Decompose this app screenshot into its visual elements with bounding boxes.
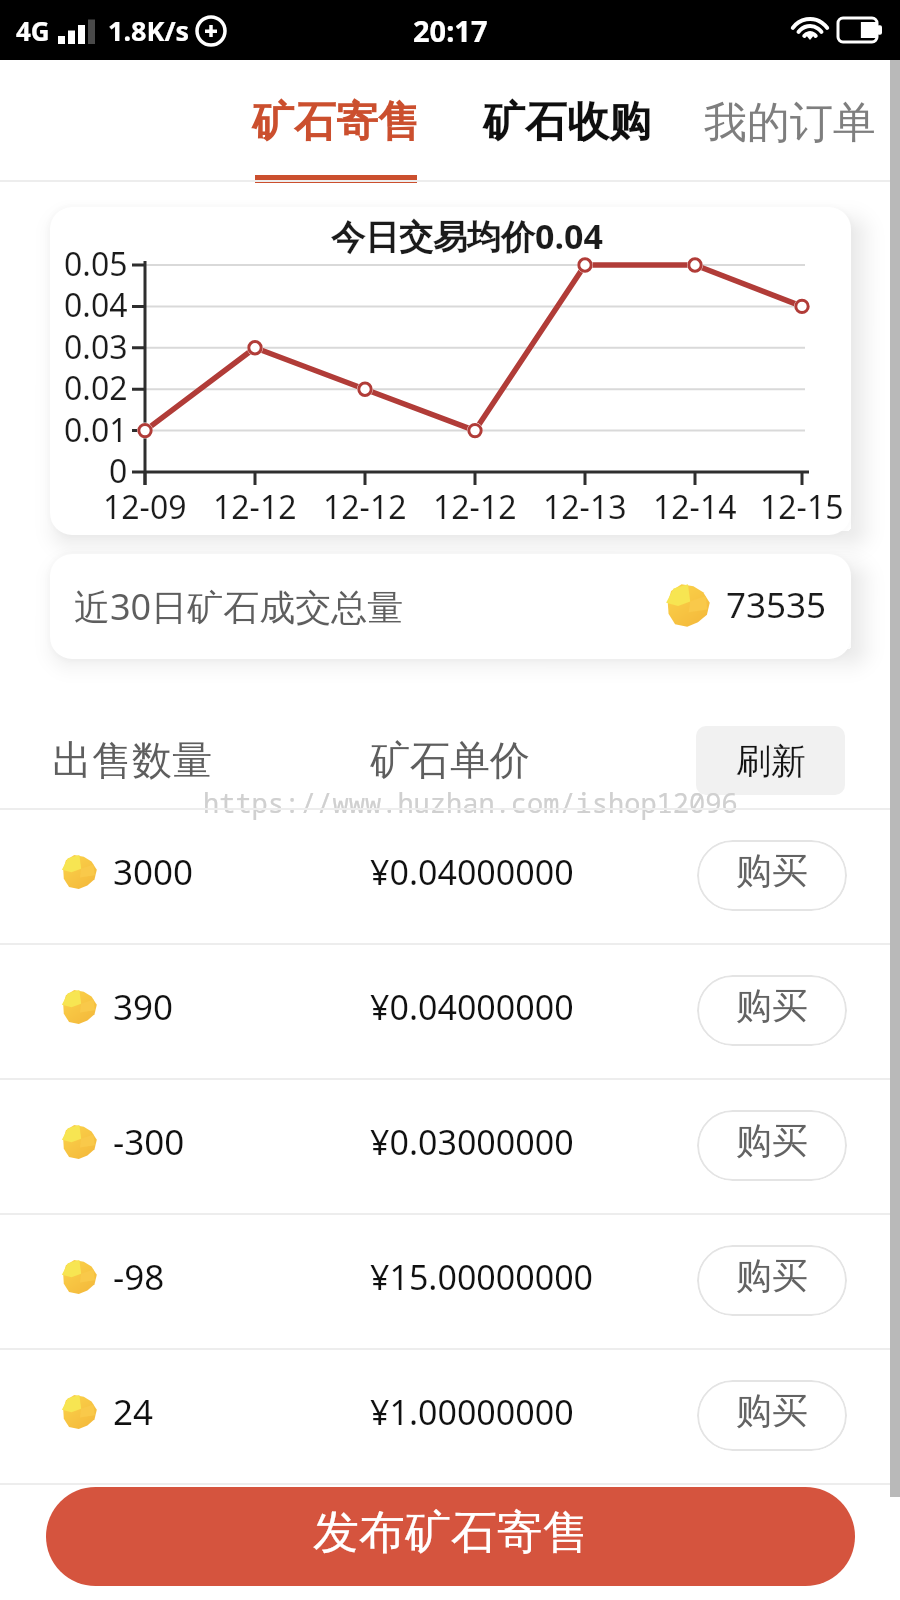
staticText: 矿石寄售 [252,96,420,149]
button[interactable]: 发布矿石寄售 [46,1487,855,1586]
staticText: 0.03 [64,325,128,369]
staticText: 购买 [736,1388,808,1433]
button[interactable]: 我的订单 [690,60,890,182]
button[interactable]: 390 [0,943,900,1078]
staticText: ¥15.00000000 [370,1254,594,1300]
button[interactable]: 购买 [697,1380,847,1451]
button[interactable]: 购买 [697,840,847,911]
staticText: 购买 [736,1118,808,1163]
button[interactable]: 矿石寄售 [236,60,436,182]
staticText: 0.04 [64,283,128,327]
staticText: 0.02 [64,366,128,410]
staticText: 12-15 [760,485,844,529]
button[interactable]: 购买 [697,1110,847,1181]
button[interactable]: 近30日矿石成交总量 [50,554,851,659]
staticText: 出售数量 [52,735,212,785]
staticText: 刷新 [736,739,806,783]
button[interactable]: 3000 [0,808,900,943]
staticText: 0 [109,449,128,493]
staticText: https://www.huzhan.com/ishop12096 [203,784,738,821]
staticText: 4G [16,13,50,48]
staticText: ¥0.03000000 [370,1119,574,1165]
staticText: 12-13 [543,485,627,529]
button[interactable]: -98 [0,1213,900,1348]
staticText: 12-09 [103,485,187,529]
staticText: 12-14 [653,485,737,529]
staticText: 390 [113,983,174,1031]
staticText: 20:17 [413,11,488,50]
staticText: 12-12 [433,485,517,529]
button[interactable]: 购买 [697,1245,847,1316]
staticText: 购买 [736,1253,808,1298]
button[interactable]: -300 [0,1078,900,1213]
staticText: ¥1.00000000 [370,1389,574,1435]
staticText: 73535 [726,581,827,629]
staticText: -300 [113,1118,185,1166]
staticText: 0.01 [64,408,128,452]
staticText: 发布矿石寄售 [313,1504,589,1562]
staticText: 矿石收购 [483,96,651,149]
staticText: 购买 [736,848,808,893]
staticText: 0.05 [64,242,128,286]
staticText: 购买 [736,983,808,1028]
staticText: ¥0.04000000 [370,849,574,895]
button[interactable]: 24 [0,1348,900,1483]
staticText: 3000 [113,848,194,896]
button[interactable]: 刷新 [696,726,845,795]
staticText: 12-12 [213,485,297,529]
staticText: -98 [113,1253,165,1301]
staticText: 1.8K/s [108,12,190,49]
button[interactable]: 购买 [697,975,847,1046]
button[interactable]: 矿石收购 [467,60,667,182]
staticText: 12-12 [323,485,407,529]
staticText: 今日交易均价0.04 [331,213,603,259]
staticText: 矿石单价 [370,735,530,785]
staticText: 24 [113,1388,154,1436]
staticText: 近30日矿石成交总量 [74,582,404,631]
staticText: 我的订单 [704,96,876,150]
staticText: ¥0.04000000 [370,984,574,1030]
